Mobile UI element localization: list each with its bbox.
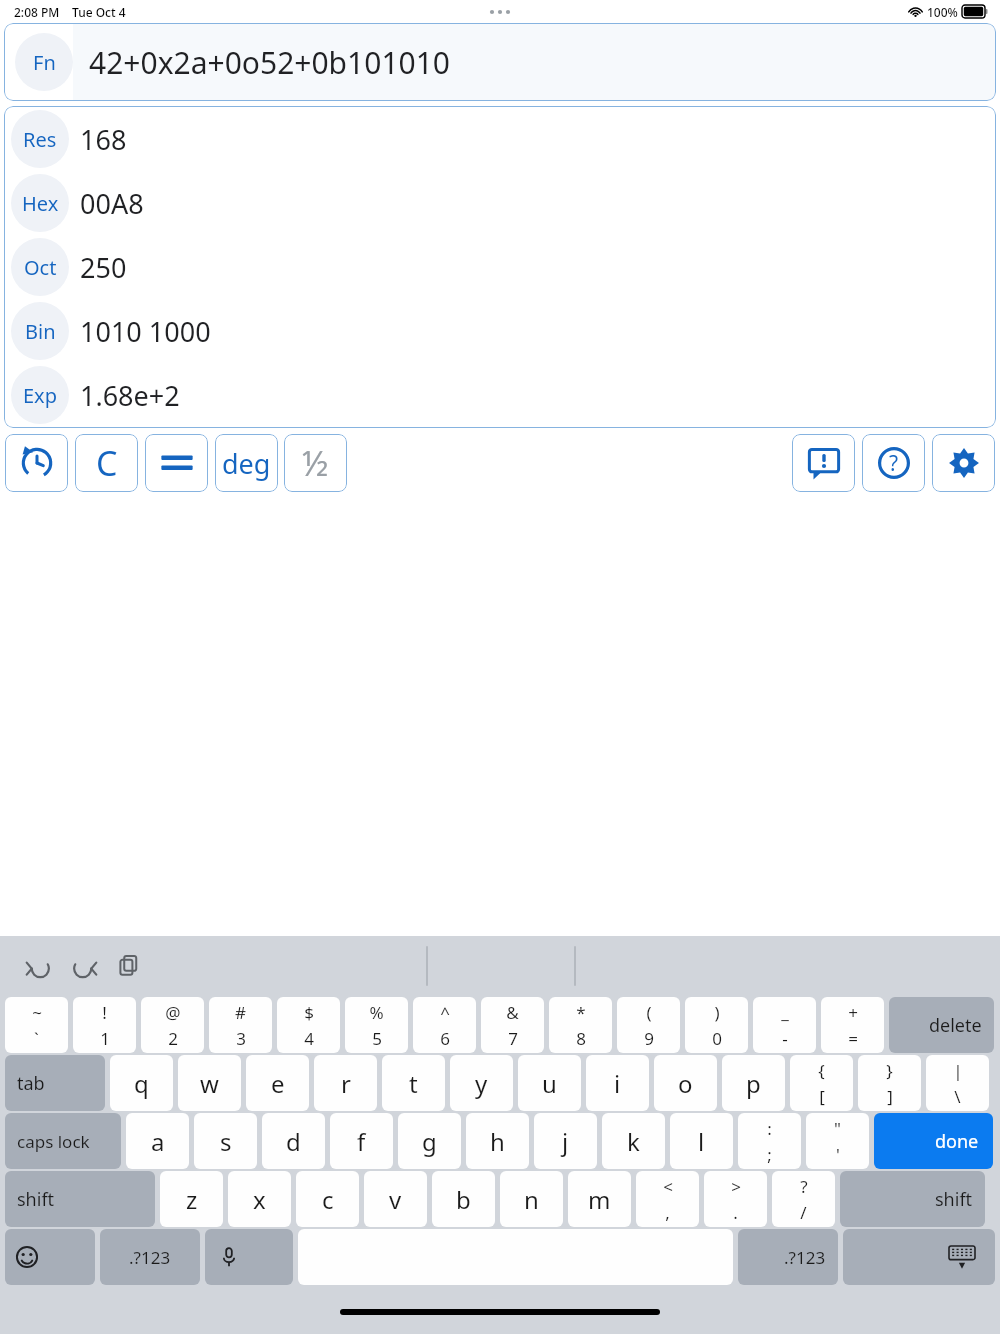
staticText: Bin (25, 318, 56, 345)
button[interactable]: Res (11, 110, 69, 168)
button[interactable]: Emoji (5, 1229, 95, 1285)
button[interactable]: > (704, 1171, 767, 1227)
staticText: [ (819, 1085, 825, 1108)
button[interactable]: j (534, 1113, 597, 1169)
button[interactable]: g (398, 1113, 461, 1169)
button[interactable]: t (382, 1055, 445, 1111)
button[interactable]: d (262, 1113, 325, 1169)
button[interactable]: Fraction mode (284, 434, 347, 492)
button[interactable]: ? (772, 1171, 835, 1227)
button[interactable]: Redo (67, 949, 101, 983)
button[interactable]: Clear (75, 434, 138, 492)
button[interactable]: o (654, 1055, 717, 1111)
button[interactable]: i (586, 1055, 649, 1111)
button[interactable]: Settings (932, 434, 995, 492)
button[interactable]: m (568, 1171, 631, 1227)
button[interactable]: Fn (15, 33, 73, 91)
staticText: ^ (440, 1001, 450, 1024)
button[interactable]: c (296, 1171, 359, 1227)
button[interactable]: p (722, 1055, 785, 1111)
button[interactable]: s (194, 1113, 257, 1169)
button[interactable]: ( (617, 997, 680, 1053)
button[interactable]: Undo (22, 949, 56, 983)
button[interactable]: Hide keyboard (843, 1229, 995, 1285)
button[interactable]: .?123 (738, 1229, 838, 1285)
button[interactable]: delete (889, 997, 994, 1053)
button[interactable]: h (466, 1113, 529, 1169)
button[interactable]: shift (5, 1171, 155, 1227)
button[interactable]: caps lock (5, 1113, 121, 1169)
button[interactable]: * (549, 997, 612, 1053)
button[interactable]: Feedback (792, 434, 855, 492)
button[interactable]: y (450, 1055, 513, 1111)
button[interactable]: Paste (113, 949, 147, 983)
staticText: h (490, 1125, 505, 1158)
staticText: v (389, 1183, 402, 1216)
button[interactable]: shift (840, 1171, 985, 1227)
button[interactable]: v (364, 1171, 427, 1227)
staticText: 9 (644, 1027, 654, 1050)
button[interactable]: w (178, 1055, 241, 1111)
button[interactable]: Exp (11, 366, 69, 424)
button[interactable]: ^ (413, 997, 476, 1053)
button[interactable]: $ (277, 997, 340, 1053)
staticText: 2:08 PM (14, 4, 60, 20)
button[interactable]: ~ (5, 997, 68, 1053)
button[interactable]: b (432, 1171, 495, 1227)
button[interactable]: done (874, 1113, 993, 1169)
staticText: k (627, 1125, 640, 1158)
button[interactable]: Oct (11, 238, 69, 296)
button[interactable]: ) (685, 997, 748, 1053)
button[interactable]: & (481, 997, 544, 1053)
button[interactable]: l (670, 1113, 733, 1169)
button[interactable]: Dictation (205, 1229, 293, 1285)
button[interactable]: Bin (11, 302, 69, 360)
button[interactable]: Angle unit degrees (215, 434, 278, 492)
button[interactable]: f (330, 1113, 393, 1169)
button[interactable]: { (790, 1055, 853, 1111)
button[interactable]: : (738, 1113, 801, 1169)
button[interactable]: r (314, 1055, 377, 1111)
button[interactable]: Hex (4, 171, 996, 235)
button[interactable]: " (806, 1113, 869, 1169)
button[interactable]: tab (5, 1055, 105, 1111)
button[interactable]: .?123 (100, 1229, 200, 1285)
button[interactable]: Help (862, 434, 925, 492)
button[interactable]: Res (4, 107, 996, 171)
staticText: ] (887, 1085, 893, 1108)
staticText: ( (646, 1001, 652, 1024)
button[interactable]: # (209, 997, 272, 1053)
staticText: y (475, 1067, 488, 1100)
button[interactable]: @ (141, 997, 204, 1053)
staticText: j (562, 1125, 569, 1158)
button[interactable]: Oct (4, 235, 996, 299)
button[interactable]: _ (753, 997, 816, 1053)
staticText: * (576, 1001, 586, 1024)
button[interactable]: History (5, 434, 68, 492)
staticText: 00A8 (80, 185, 144, 222)
staticText: Exp (23, 382, 57, 409)
staticText: $ (304, 1001, 314, 1024)
button[interactable]: n (500, 1171, 563, 1227)
button[interactable]: a (126, 1113, 189, 1169)
button[interactable]: | (926, 1055, 989, 1111)
button[interactable]: } (858, 1055, 921, 1111)
button[interactable]: Exp (4, 363, 996, 427)
button[interactable]: % (345, 997, 408, 1053)
button[interactable]: e (246, 1055, 309, 1111)
button[interactable]: q (110, 1055, 173, 1111)
button[interactable]: + (821, 997, 884, 1053)
staticText: caps lock (17, 1130, 90, 1153)
button[interactable]: Hex (11, 174, 69, 232)
button[interactable]: x (228, 1171, 291, 1227)
button[interactable]: k (602, 1113, 665, 1169)
button[interactable]: z (160, 1171, 223, 1227)
button[interactable]: ! (73, 997, 136, 1053)
button[interactable]: Bin (4, 299, 996, 363)
staticText: q (134, 1067, 149, 1100)
staticText: d (286, 1125, 301, 1158)
button[interactable]: < (636, 1171, 699, 1227)
button[interactable]: Equals (145, 434, 208, 492)
button[interactable]: u (518, 1055, 581, 1111)
